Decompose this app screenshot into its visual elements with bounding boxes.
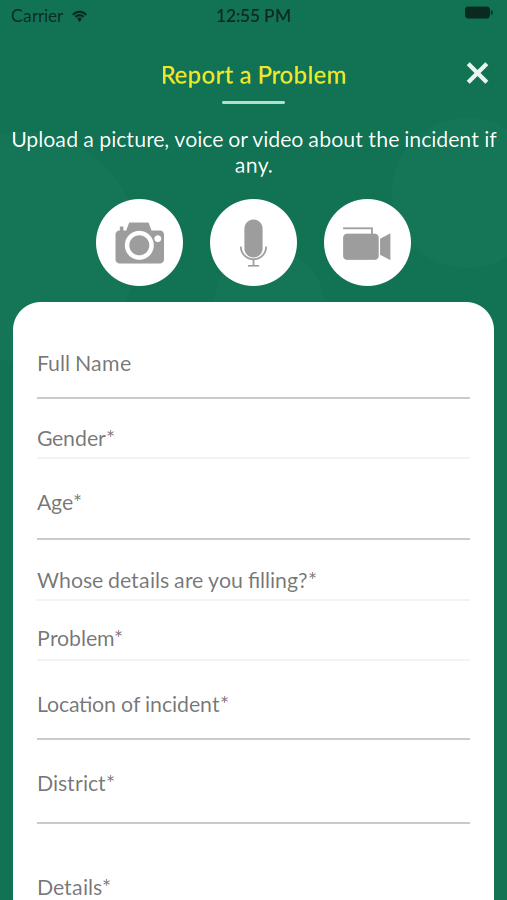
staticText: Report a Problem — [160, 60, 346, 89]
staticText: Age* — [37, 489, 82, 515]
staticText: Upload a picture, voice or video about t… — [11, 126, 496, 177]
staticText: Whose details are you filling?* — [37, 567, 317, 593]
staticText: Location of incident* — [37, 691, 229, 717]
button[interactable]: Take a photo — [96, 199, 183, 286]
staticText: Full Name — [37, 350, 131, 376]
staticText: Details* — [37, 874, 111, 900]
staticText: District* — [37, 770, 115, 796]
staticText: 12:55 PM — [216, 5, 291, 26]
button[interactable]: Record audio — [210, 199, 297, 286]
button[interactable]: Record video — [324, 199, 411, 286]
staticText: Problem* — [37, 625, 123, 651]
staticText: Gender* — [37, 425, 115, 451]
staticText: Carrier — [11, 5, 63, 26]
button[interactable]: Close — [453, 49, 501, 97]
